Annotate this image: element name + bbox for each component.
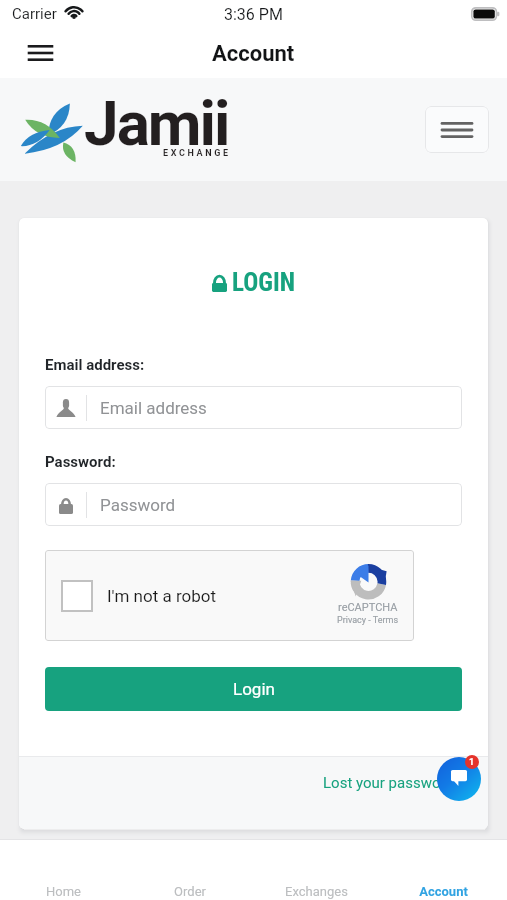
button[interactable]: Home <box>0 840 126 900</box>
button[interactable]: Open chat <box>437 757 481 801</box>
staticText: Account <box>419 884 468 899</box>
staticText: Carrier <box>12 5 57 23</box>
staticText: Privacy - Terms <box>337 615 399 626</box>
staticText: Login <box>233 679 275 699</box>
staticText: reCAPTCHA <box>338 601 398 614</box>
staticText: 3:36 PM <box>224 5 283 24</box>
button[interactable]: Menu <box>19 33 61 75</box>
staticText: Order <box>174 884 206 899</box>
button[interactable]: Exchanges <box>253 840 380 900</box>
staticText: Exchanges <box>285 884 348 899</box>
staticText: LOGIN <box>232 268 295 297</box>
button[interactable]: Open navigation <box>425 106 489 153</box>
staticText: Home <box>46 884 81 899</box>
staticText: Jamii <box>84 87 229 160</box>
staticText: Email address <box>100 398 207 418</box>
staticText: E X C H A N G E <box>163 148 229 159</box>
staticText: Account <box>212 41 295 67</box>
staticText: Email address: <box>45 356 145 374</box>
button[interactable]: Order <box>126 840 253 900</box>
button[interactable]: Login <box>45 667 462 711</box>
button[interactable]: Email address <box>45 386 462 429</box>
button[interactable]: I'm not a robot checkbox <box>61 580 93 612</box>
staticText: Password <box>100 495 176 515</box>
button[interactable]: Password <box>45 483 462 526</box>
button[interactable]: Lost your password? <box>323 774 462 792</box>
staticText: Password: <box>45 453 116 471</box>
staticText: 1 <box>469 757 475 768</box>
staticText: I'm not a robot <box>107 586 216 606</box>
button[interactable]: Account <box>380 840 507 900</box>
